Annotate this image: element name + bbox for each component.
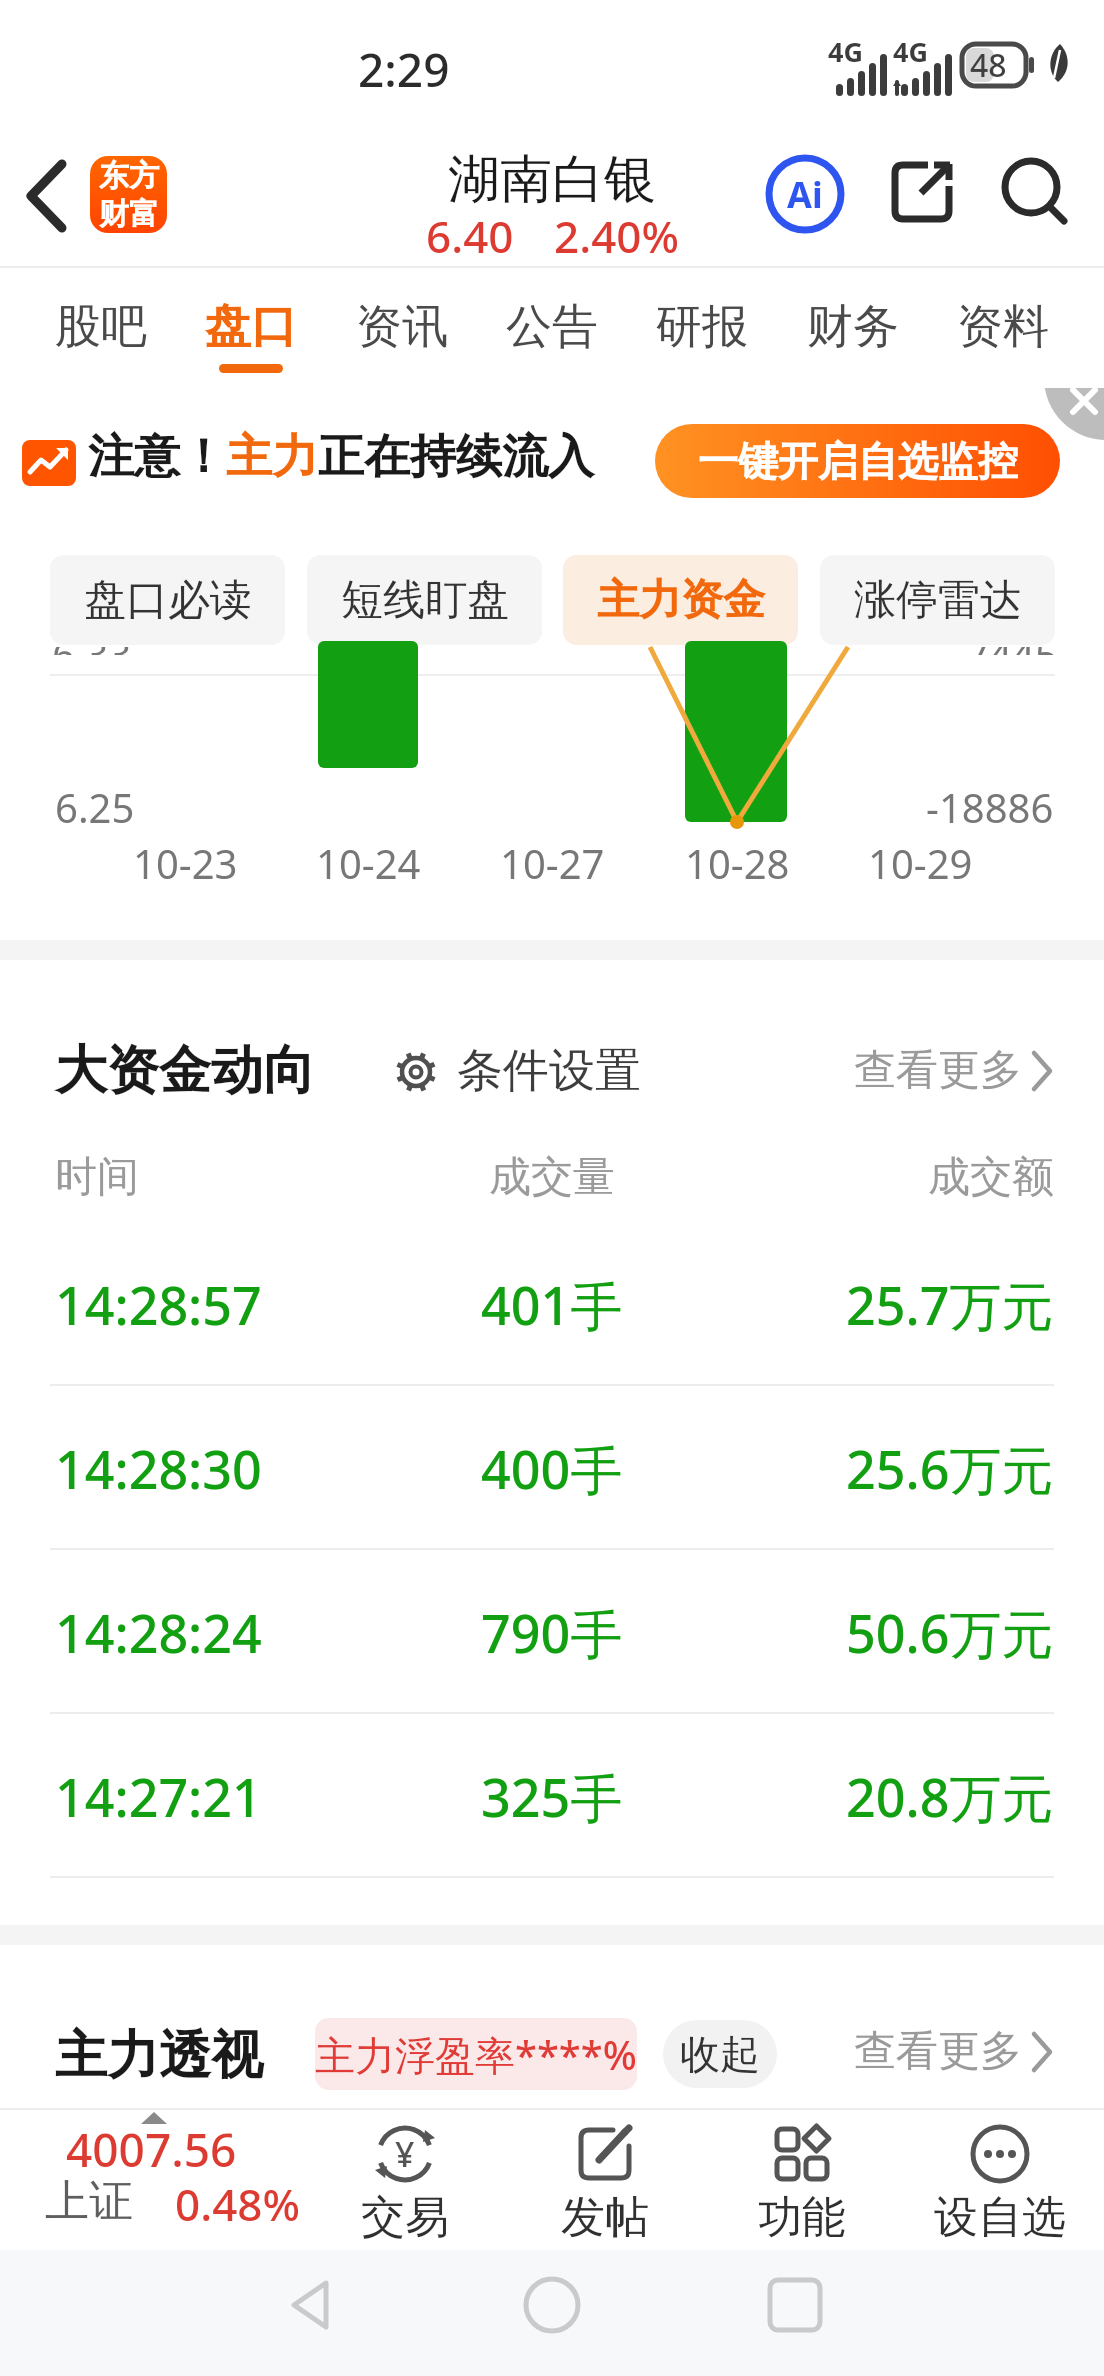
staticText: 10-29 [868, 836, 973, 890]
staticText: 790手 [481, 1597, 623, 1668]
staticText: 功能 [758, 2190, 846, 2245]
staticText: 研报 [656, 298, 748, 356]
staticText: 公告 [506, 298, 598, 356]
button[interactable]: 短线盯盘 [307, 555, 542, 645]
button[interactable]: 涨停雷达 [820, 555, 1055, 645]
button[interactable] [1000, 158, 1070, 228]
staticText: 0.48% [175, 2174, 300, 2234]
button[interactable]: 研报 [656, 268, 748, 388]
staticText: 财富 [99, 195, 159, 233]
staticText: 10-27 [500, 836, 605, 890]
staticText: 4G [828, 33, 863, 70]
button[interactable]: 主力浮盈率****% [315, 2018, 637, 2090]
staticText: 成交量 [489, 1151, 615, 1204]
staticText: 10-23 [133, 836, 238, 890]
staticText: 正在持续流入 [318, 428, 594, 486]
staticText: 20.8万元 [846, 1761, 1054, 1832]
button[interactable]: 14:27:21 [0, 1714, 1104, 1878]
staticText: 14:28:57 [55, 1269, 262, 1340]
button[interactable] [10, 150, 90, 250]
button[interactable]: 公告 [506, 268, 598, 388]
staticText: 主力 [226, 428, 318, 486]
staticText: 25.7万元 [846, 1269, 1054, 1340]
button[interactable]: 一键开启自选监控 [655, 424, 1060, 498]
staticText: 一键开启自选监控 [698, 436, 1018, 486]
staticText: ¥ [395, 2131, 415, 2177]
button[interactable] [270, 2275, 350, 2355]
staticText: 查看更多 [854, 2025, 1022, 2078]
staticText: 6.33 [52, 647, 132, 655]
staticText: 盘口必读 [84, 574, 252, 627]
button[interactable]: 盘口 [205, 268, 297, 388]
button[interactable]: 14:28:57 [0, 1222, 1104, 1386]
button[interactable]: Ai [766, 155, 844, 233]
staticText: 资料 [957, 298, 1049, 356]
staticText: 盘口 [205, 298, 297, 356]
staticText: 大资金动向 [55, 1038, 315, 1104]
button[interactable]: 东方 [90, 156, 167, 233]
button[interactable]: 4007.56 [0, 2108, 310, 2250]
button[interactable] [890, 158, 956, 224]
staticText: 2:29 [358, 38, 450, 101]
staticText: Ai [787, 170, 823, 219]
staticText: 股吧 [55, 298, 147, 356]
staticText: 时间 [55, 1151, 139, 1204]
staticText: 上证 [45, 2174, 133, 2229]
button[interactable]: 14:28:24 [0, 1550, 1104, 1714]
staticText: 325手 [481, 1761, 623, 1832]
staticText: 10-28 [685, 836, 790, 890]
staticText: 14:27:21 [55, 1761, 262, 1832]
button[interactable]: 股吧 [55, 268, 147, 388]
staticText: 50.6万元 [846, 1597, 1054, 1668]
staticText: 短线盯盘 [341, 574, 509, 627]
staticText: 主力透视 [55, 2023, 263, 2089]
button[interactable]: 财务 [807, 268, 899, 388]
button[interactable]: 资讯 [356, 268, 448, 388]
staticText: 查看更多 [854, 1044, 1022, 1097]
staticText: 湖南白银 [448, 147, 656, 213]
button[interactable]: 收起 [663, 2020, 777, 2088]
staticText: 注意！ [88, 428, 226, 486]
staticText: 收起 [680, 2029, 760, 2079]
staticText: 财务 [807, 298, 899, 356]
button[interactable]: 盘口必读 [50, 555, 285, 645]
staticText: -18886 [926, 780, 1054, 834]
staticText: 资讯 [356, 298, 448, 356]
staticText: 25.6万元 [846, 1433, 1054, 1504]
staticText: 主力资金 [597, 574, 765, 627]
button[interactable]: 14:28:30 [0, 1386, 1104, 1550]
button[interactable] [755, 2275, 835, 2355]
button[interactable]: 查看更多 [854, 1044, 1054, 1097]
staticText: 4G [893, 33, 928, 70]
button[interactable]: 功能 [727, 2108, 877, 2250]
button[interactable]: 查看更多 [854, 2025, 1054, 2078]
button[interactable]: 设自选 [925, 2108, 1075, 2250]
staticText: 6.25 [55, 780, 135, 834]
staticText: 涨停雷达 [854, 574, 1022, 627]
staticText: 4007.56 [66, 2118, 237, 2181]
staticText: 10-24 [316, 836, 421, 890]
staticText: 7445 [966, 647, 1058, 655]
button[interactable]: 条件设置 [457, 1042, 641, 1100]
button[interactable]: ¥ [330, 2108, 480, 2250]
staticText: 48 [970, 43, 1007, 85]
staticText: 发帖 [561, 2190, 649, 2245]
staticText: 14:28:30 [55, 1433, 262, 1504]
staticText: 401手 [481, 1269, 623, 1340]
staticText: 交易 [361, 2190, 449, 2245]
button[interactable] [512, 2275, 592, 2355]
button[interactable]: 资料 [957, 268, 1049, 388]
button[interactable]: 主力资金 [563, 555, 798, 645]
button[interactable] [1044, 388, 1104, 498]
staticText: 400手 [481, 1433, 623, 1504]
staticText: 设自选 [934, 2190, 1066, 2245]
staticText: 6.40 [426, 206, 514, 266]
staticText: 成交额 [928, 1151, 1054, 1204]
staticText: 2.40% [554, 206, 679, 266]
staticText: 14:28:24 [55, 1597, 262, 1668]
button[interactable]: 发帖 [530, 2108, 680, 2250]
staticText: 东方 [99, 157, 159, 195]
staticText: 主力浮盈率****% [315, 2027, 637, 2082]
